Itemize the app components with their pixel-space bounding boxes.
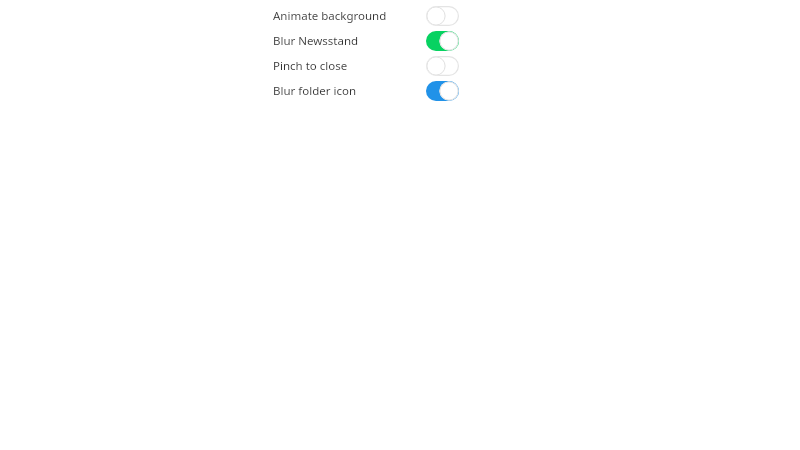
staticText: Blur folder icon	[273, 83, 357, 99]
staticText: Pinch to close	[273, 58, 348, 74]
button[interactable]: Pinch to close	[273, 53, 459, 78]
staticText: Blur Newsstand	[273, 33, 359, 49]
button[interactable]: Blur folder icon	[273, 78, 459, 103]
button[interactable]: Blur Newsstand	[273, 28, 459, 53]
button[interactable]: Animate background	[273, 3, 459, 28]
staticText: Animate background	[273, 8, 387, 24]
button[interactable]: Toggle Pinch to close	[426, 56, 459, 76]
button[interactable]: Toggle Blur Newsstand	[426, 31, 459, 51]
button[interactable]: Toggle Animate background	[426, 6, 459, 26]
button[interactable]: Toggle Blur folder icon	[426, 81, 459, 101]
